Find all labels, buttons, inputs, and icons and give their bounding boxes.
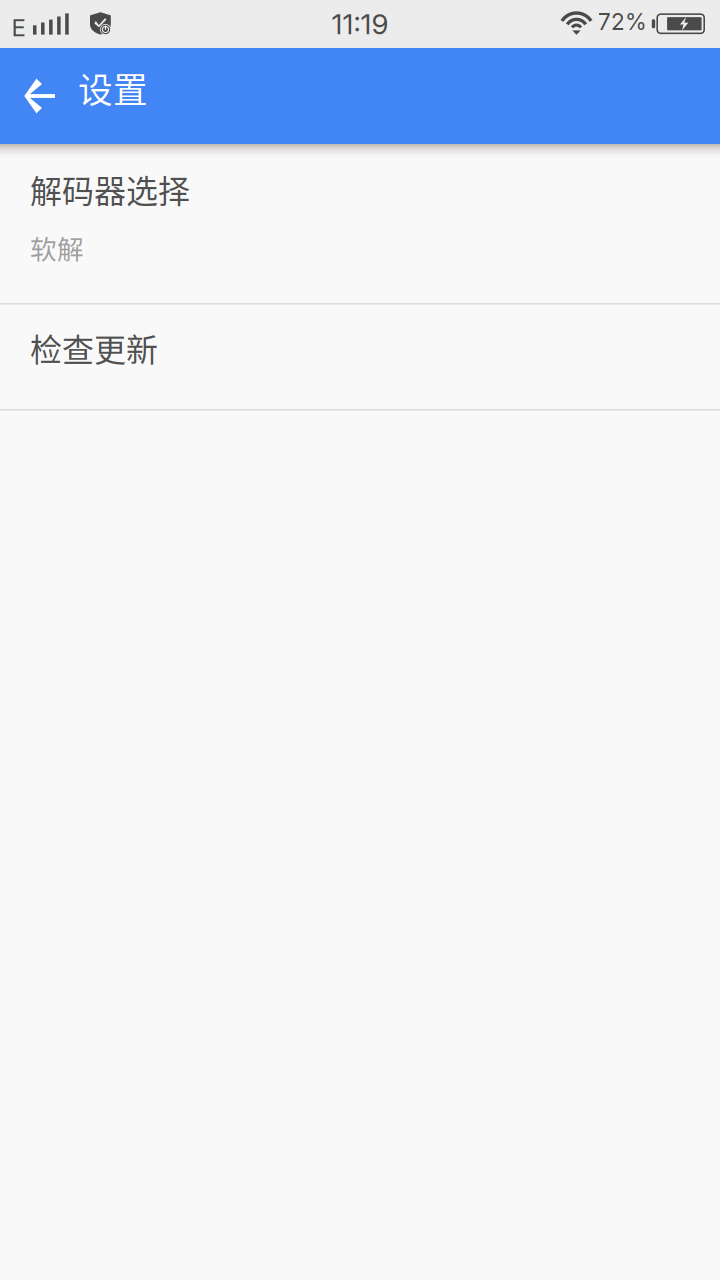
staticText: 检查更新 (30, 325, 158, 371)
staticText: E (11, 13, 25, 42)
button[interactable]: 解码器选择 (0, 144, 720, 305)
staticText: 72% (598, 8, 647, 35)
button[interactable]: 检查更新 (0, 305, 720, 411)
staticText: 解码器选择 (30, 166, 190, 212)
staticText: 11:19 (331, 7, 388, 41)
button[interactable]: Back (0, 48, 78, 144)
staticText: 软解 (30, 228, 84, 267)
staticText: 设置 (78, 63, 148, 113)
